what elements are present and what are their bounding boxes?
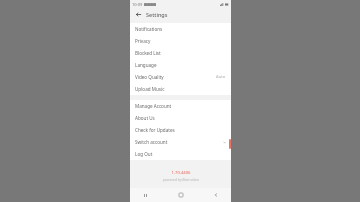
button[interactable]: Back: [134, 10, 143, 19]
button[interactable]: Home: [176, 190, 186, 200]
staticText: Language: [135, 62, 157, 68]
button[interactable]: Video Quality: [130, 71, 231, 83]
button[interactable]: Log Out: [130, 148, 231, 160]
button[interactable]: Recents: [140, 190, 150, 200]
staticText: 10:09: [132, 2, 143, 7]
staticText: Settings: [146, 11, 168, 18]
button[interactable]: Check for Updates: [130, 124, 231, 136]
button[interactable]: Language: [130, 59, 231, 71]
button[interactable]: Notifications: [130, 23, 231, 35]
staticText: Auto: [216, 74, 226, 80]
button[interactable]: Privacy: [130, 35, 231, 47]
staticText: Log Out: [135, 151, 153, 157]
button[interactable]: Upload Music: [130, 83, 231, 95]
staticText: Blocked List: [135, 50, 161, 56]
staticText: 1.70.4406: [171, 170, 191, 176]
staticText: Video Quality: [135, 74, 164, 80]
staticText: Notifications: [135, 26, 163, 32]
staticText: Privacy: [135, 38, 151, 44]
staticText: powered by Best video: [163, 177, 199, 182]
button[interactable]: Blocked List: [130, 47, 231, 59]
staticText: Upload Music: [135, 86, 165, 92]
staticText: Check for Updates: [135, 127, 175, 133]
staticText: About Us: [135, 115, 155, 121]
button[interactable]: About Us: [130, 112, 231, 124]
button[interactable]: Manage Account: [130, 100, 231, 112]
button[interactable]: Back: [211, 190, 221, 200]
button[interactable]: Switch account: [130, 136, 231, 148]
staticText: Manage Account: [135, 103, 172, 109]
staticText: Switch account: [135, 139, 168, 145]
